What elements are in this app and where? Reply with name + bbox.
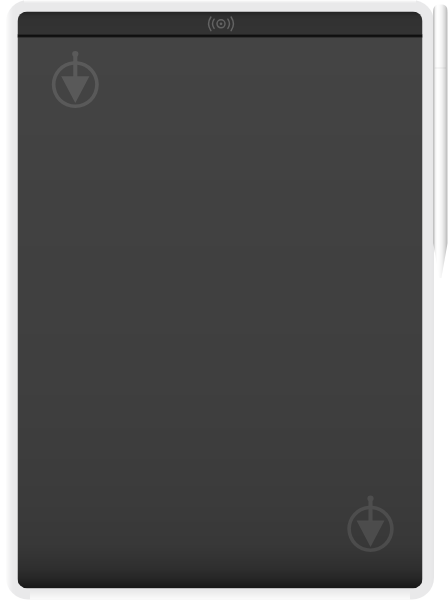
- button[interactable]: Stylus: [432, 4, 448, 280]
- button[interactable]: Erase screen: [203, 12, 239, 36]
- button[interactable]: Writing surface: [18, 36, 423, 588]
